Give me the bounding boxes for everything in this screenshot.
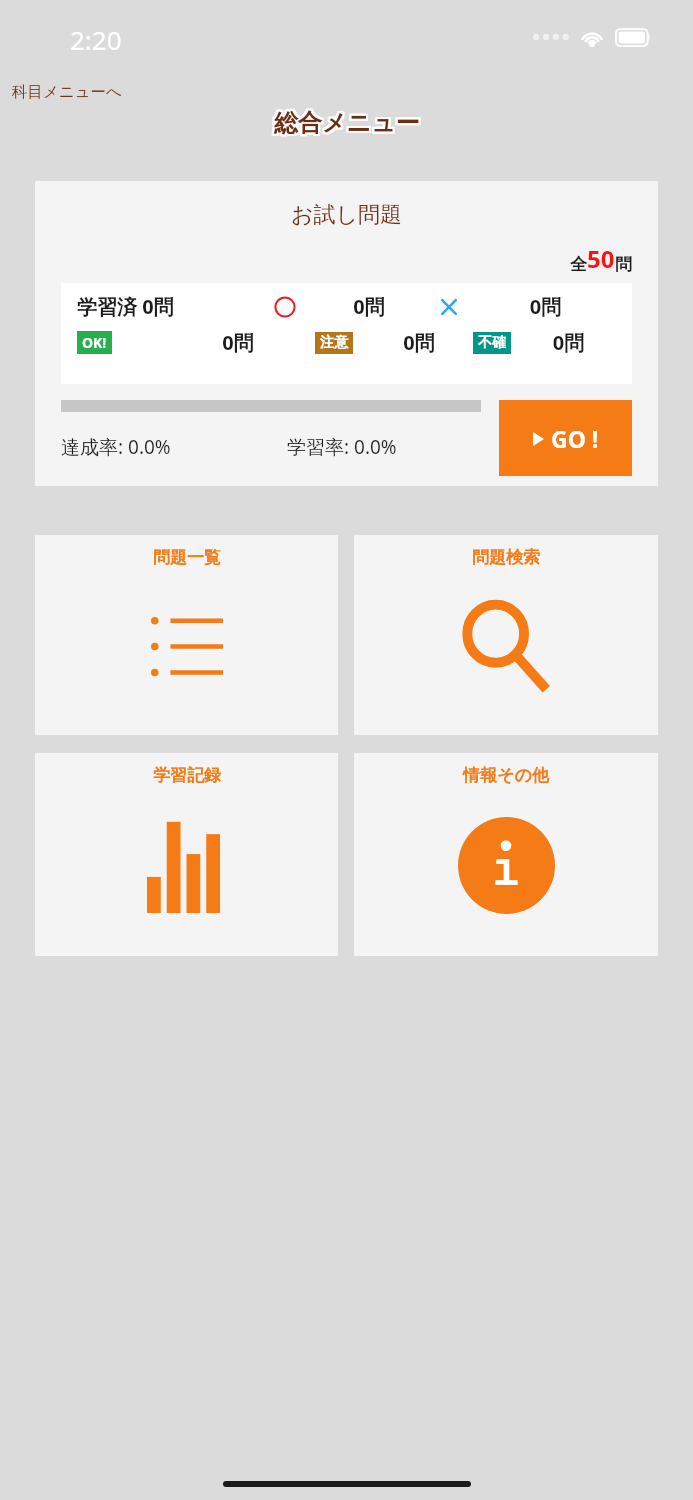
staticText: 学習率: 0.0% [287,434,397,460]
staticText: 総合メニュー [272,110,418,140]
button[interactable]: Information and other [354,753,658,956]
button[interactable]: Question list [35,535,338,735]
button[interactable]: 科目メニューへ [10,80,124,104]
staticText: 科目メニューへ [12,82,122,102]
staticText: 不確 [478,334,506,352]
staticText: 総合メニュー [274,110,420,140]
staticText: 0問 [315,293,423,320]
staticText: 0問 [365,329,473,356]
staticText: 問題検索 [472,547,540,568]
staticText: 問題一覧 [153,547,221,568]
staticText: 学習記録 [153,765,221,786]
staticText: 総合メニュー [276,110,422,140]
staticText: 0問 [475,293,616,320]
staticText: 0問 [161,329,315,356]
staticText: 全 [570,254,587,275]
button[interactable]: GO ! [499,400,632,476]
button[interactable]: Search questions [354,535,658,735]
staticText: 50 [587,242,615,275]
staticText: 学習済 0問 [77,293,255,320]
staticText: お試し問題 [291,201,403,229]
staticText: 0問 [521,329,616,356]
staticText: 総合メニュー [276,106,422,136]
staticText: 2:20 [70,22,122,57]
staticText: OK! [82,333,107,352]
staticText: 総合メニュー [274,106,420,136]
staticText: 総合メニュー [272,106,418,136]
staticText: 情報その他 [463,765,549,786]
button[interactable]: Study records [35,753,338,956]
staticText: 総合メニュー [274,108,420,138]
staticText: 達成率: 0.0% [61,434,287,460]
staticText: 問 [615,254,632,275]
staticText: 総合メニュー [276,108,422,138]
staticText: GO ! [551,423,599,454]
staticText: 注意 [320,334,348,352]
staticText: 総合メニュー [272,108,418,138]
